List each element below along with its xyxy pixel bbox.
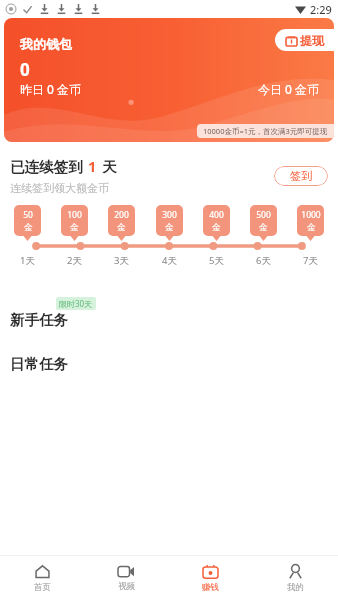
staticText: 300 [162,209,177,221]
button[interactable]: 400 [203,205,230,236]
button[interactable]: 50 [14,205,41,236]
staticText: 1天 [20,254,35,267]
staticText: 4天 [162,254,177,267]
button[interactable]: 100 [61,205,88,236]
staticText: 连续签到领大额金币 [10,181,109,195]
staticText: 3天 [114,254,129,267]
staticText: 500 [256,209,271,221]
button[interactable]: 1000 [297,205,324,236]
staticText: 2:29 [310,2,332,17]
staticText: 昨日 0 金币 [20,81,82,97]
button[interactable]: 首页 [0,556,84,600]
staticText: 400 [209,209,224,221]
staticText: 0 [20,58,30,81]
staticText: 限时30天 [59,298,93,309]
staticText: 1 [88,156,97,176]
staticText: 天 [102,158,117,176]
staticText: 我的 [287,582,304,593]
staticText: 我的钱包 [20,36,72,52]
staticText: 金 [212,222,221,233]
staticText: 已连续签到 [10,158,83,176]
staticText: 视频 [118,581,135,592]
button[interactable]: 200 [108,205,135,236]
staticText: 金 [117,222,126,233]
button[interactable]: 300 [156,205,183,236]
staticText: 1000 [301,209,321,221]
staticText: 6天 [256,254,271,267]
button[interactable]: 视频 [84,556,168,600]
staticText: 首页 [34,582,51,593]
staticText: 10000金币=1元，首次满3元即可提现 [203,126,328,136]
staticText: 金 [24,222,33,233]
staticText: 2天 [67,254,82,267]
button[interactable]: 我的钱包 [4,18,334,142]
button[interactable]: 赚钱 [168,556,253,600]
staticText: 50 [23,209,33,221]
staticText: 日常任务 [10,355,68,373]
staticText: 7天 [303,254,318,267]
staticText: 新手任务 [10,311,68,329]
staticText: 200 [114,209,129,221]
button[interactable]: 提现 [286,29,324,51]
button[interactable]: 签到 [290,169,312,183]
staticText: 金 [259,222,268,233]
staticText: 今日 0 金币 [258,81,320,97]
button[interactable]: 500 [250,205,277,236]
staticText: 100 [67,209,82,221]
staticText: 签到 [290,169,312,183]
staticText: 提现 [300,33,324,48]
button[interactable]: 我的 [253,556,338,600]
staticText: 金 [165,222,174,233]
staticText: 金 [70,222,79,233]
staticText: 赚钱 [202,582,219,593]
staticText: 金 [307,222,316,233]
staticText: 5天 [209,254,224,267]
